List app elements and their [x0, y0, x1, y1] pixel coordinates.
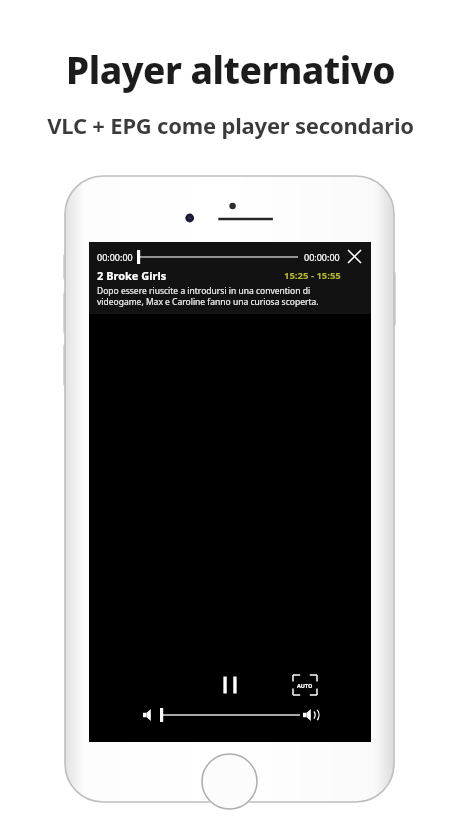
button[interactable]: Volume up	[303, 708, 319, 722]
staticText: Dopo essere riuscite a introdursi in una…	[97, 285, 339, 307]
staticText: VLC + EPG come player secondario	[47, 110, 414, 140]
staticText: 00:00:00	[304, 251, 340, 263]
staticText: AUTO	[297, 682, 313, 689]
staticText: 2 Broke Girls	[97, 268, 167, 283]
staticText: Player alternativo	[66, 44, 395, 94]
button[interactable]: Close	[346, 248, 363, 265]
button[interactable]: Seek bar	[137, 250, 299, 264]
button[interactable]: Home	[201, 753, 258, 810]
button[interactable]: Volume	[160, 707, 300, 723]
button[interactable]: Aspect ratio auto	[293, 675, 317, 695]
staticText: 15:25 - 15:55	[284, 269, 341, 282]
staticText: 00:00:00	[97, 251, 133, 263]
button[interactable]: Pause	[215, 673, 245, 697]
button[interactable]: Mute	[143, 708, 157, 722]
